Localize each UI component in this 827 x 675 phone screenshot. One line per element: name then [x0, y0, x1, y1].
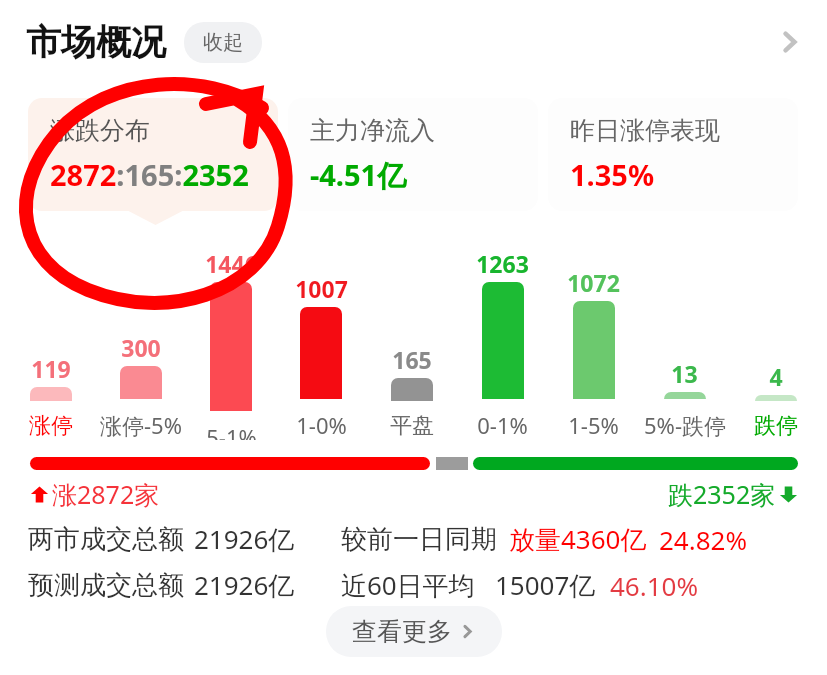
staticText: 主力净流入	[310, 115, 435, 146]
staticText: 1.35%	[570, 155, 655, 194]
staticText: 5-1%	[206, 422, 257, 440]
button[interactable]: 查看更多	[326, 606, 502, 657]
staticText: 两市成交总额	[28, 523, 184, 556]
staticText: 13	[671, 358, 698, 389]
staticText: 0-1%	[477, 410, 528, 440]
staticText: 涨停	[29, 412, 73, 440]
staticText: 近60日平均	[341, 567, 475, 603]
staticText: 较前一日同期	[341, 523, 497, 556]
staticText: 46.10%	[610, 568, 699, 603]
staticText: 1-5%	[568, 410, 619, 440]
staticText: 300	[121, 332, 161, 363]
staticText: 15007亿	[495, 567, 596, 603]
staticText: 165	[392, 344, 432, 375]
staticText: 查看更多	[352, 616, 452, 647]
staticText: 21926亿	[194, 567, 295, 603]
staticText: 平盘	[390, 412, 434, 440]
button[interactable]: 涨跌分布	[28, 98, 278, 211]
staticText: 涨停-5%	[100, 410, 182, 440]
staticText: 5%-跌停	[644, 410, 726, 440]
button[interactable]: 主力净流入	[288, 98, 538, 211]
staticText: 4	[769, 361, 783, 392]
staticText: 收起	[203, 30, 243, 55]
staticText: -4.51亿	[310, 155, 407, 195]
button[interactable]: Open market overview	[761, 13, 819, 71]
staticText: 119	[31, 353, 71, 384]
staticText: 涨跌分布	[50, 115, 150, 146]
staticText: 1-0%	[296, 410, 347, 440]
staticText: 跌2352家	[668, 477, 776, 511]
staticText: 放量4360亿	[509, 521, 647, 557]
staticText: 24.82%	[659, 522, 748, 557]
staticText: 预测成交总额	[28, 569, 184, 602]
button[interactable]: 昨日涨停表现	[548, 98, 798, 211]
staticText: 21926亿	[194, 521, 295, 557]
staticText: 跌停	[754, 412, 798, 440]
staticText: 2872:165:2352	[50, 155, 249, 194]
staticText: 市场概况	[26, 20, 166, 64]
staticText: 1007	[295, 273, 348, 304]
staticText: 涨2872家	[52, 477, 160, 511]
staticText: 1072	[567, 267, 620, 298]
staticText: 1446	[205, 248, 258, 279]
staticText: 1263	[476, 248, 529, 279]
button[interactable]: 收起	[184, 22, 262, 63]
staticText: 昨日涨停表现	[570, 115, 720, 146]
